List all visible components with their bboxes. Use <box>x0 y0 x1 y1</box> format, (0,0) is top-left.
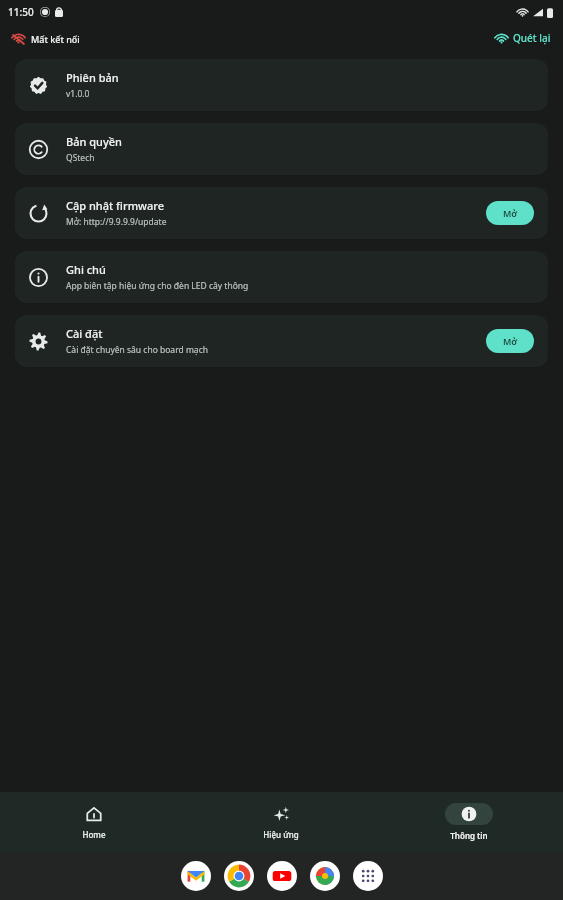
staticText: Mở <box>503 335 518 347</box>
staticText: Phiên bản <box>66 70 119 85</box>
staticText: Mở: http://9.9.9.9/update <box>66 216 167 228</box>
staticText: Cập nhật firmware <box>66 198 164 213</box>
staticText: Ghi chú <box>66 262 106 277</box>
button[interactable]: Phiên bản <box>15 59 548 111</box>
button[interactable]: Thông tin <box>375 792 563 852</box>
button[interactable]: Cài đặt <box>15 315 548 367</box>
button[interactable]: Hiệu ứng <box>187 792 375 852</box>
button[interactable]: Cập nhật firmware <box>15 187 548 239</box>
button[interactable]: Quét lại <box>493 29 553 47</box>
staticText: Hiệu ứng <box>263 829 299 840</box>
button[interactable]: App <box>181 861 211 891</box>
button[interactable]: Ghi chú <box>15 251 548 303</box>
staticText: 11:50 <box>8 5 34 19</box>
button[interactable]: App <box>310 861 340 891</box>
button[interactable]: Mất kết nối <box>10 30 82 47</box>
staticText: Mất kết nối <box>31 33 80 45</box>
staticText: Thông tin <box>450 830 488 841</box>
staticText: Cài đặt chuyên sâu cho board mạch <box>66 344 208 356</box>
staticText: v1.0.0 <box>66 88 90 100</box>
staticText: Bản quyền <box>66 134 122 149</box>
staticText: QStech <box>66 152 95 164</box>
staticText: Home <box>82 829 106 840</box>
button[interactable]: Mở <box>486 329 534 353</box>
button[interactable]: Mở <box>486 201 534 225</box>
staticText: App biên tập hiệu ứng cho đèn LED cây th… <box>66 280 249 292</box>
button[interactable]: Bản quyền <box>15 123 548 175</box>
staticText: Quét lại <box>513 31 551 45</box>
staticText: Mở <box>503 207 518 219</box>
button[interactable]: App <box>224 861 254 891</box>
staticText: Cài đặt <box>66 326 103 341</box>
button[interactable]: Home <box>0 792 187 852</box>
button[interactable]: App <box>353 861 383 891</box>
button[interactable]: App <box>267 861 297 891</box>
